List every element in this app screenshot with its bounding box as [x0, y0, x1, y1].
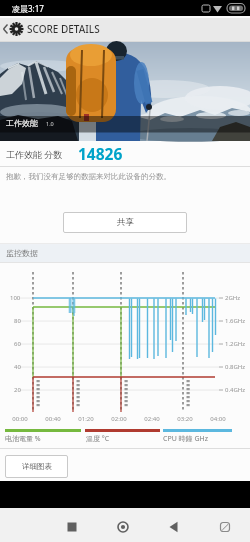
button[interactable]: [208, 508, 242, 542]
staticText: 02:40: [144, 415, 160, 423]
staticText: 14826: [78, 143, 123, 164]
staticText: 详细图表: [22, 462, 52, 471]
staticText: 00:00: [12, 415, 28, 423]
staticText: SCORE DETAILS: [27, 22, 100, 36]
staticText: 20: [14, 386, 21, 394]
staticText: 2GHz: [225, 294, 241, 302]
button[interactable]: [106, 508, 140, 542]
staticText: 温度 °C: [86, 434, 110, 444]
staticText: 工作效能: [6, 118, 38, 128]
staticText: 00:40: [45, 415, 61, 423]
staticText: 凌晨3:17: [12, 3, 44, 14]
staticText: 1.0: [46, 120, 54, 127]
staticText: CPU 時鐘 GHz: [163, 434, 208, 444]
button[interactable]: [0, 16, 26, 42]
staticText: 40: [14, 363, 21, 371]
staticText: 工作效能 分数: [6, 148, 63, 160]
staticText: 01:20: [78, 415, 94, 423]
staticText: 1.2GHz: [225, 340, 246, 348]
staticText: 监控数据: [6, 248, 38, 258]
button[interactable]: [157, 508, 191, 542]
staticText: 1.6GHz: [225, 317, 246, 325]
staticText: 共享: [117, 217, 134, 228]
staticText: 100: [10, 294, 21, 302]
staticText: 0.8GHz: [225, 363, 246, 371]
staticText: 抱歉，我们没有足够的数据来对比此设备的分数。: [6, 172, 171, 181]
button[interactable]: 共享: [63, 212, 187, 233]
staticText: 80: [14, 317, 21, 325]
button[interactable]: 详细图表: [5, 455, 68, 478]
staticText: 60: [14, 340, 21, 348]
button[interactable]: [55, 508, 89, 542]
staticText: 03:20: [177, 415, 193, 423]
staticText: 0.4GHz: [225, 386, 246, 394]
staticText: 04:00: [210, 415, 226, 423]
staticText: 电池電量 %: [5, 434, 41, 444]
staticText: 02:00: [111, 415, 127, 423]
